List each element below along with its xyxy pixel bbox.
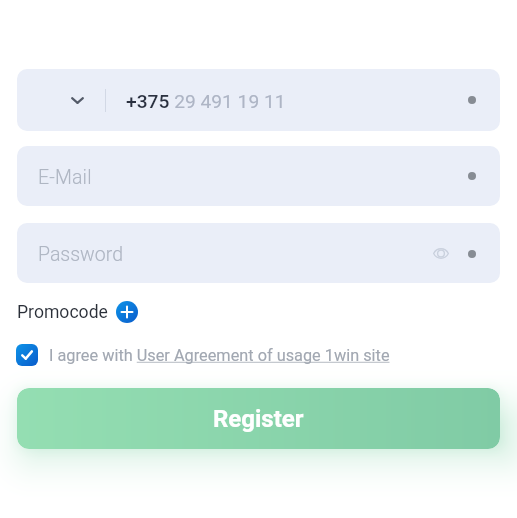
staticText: +375 29 491 19 11 [126,90,286,113]
button[interactable]: E-Mail [17,146,500,206]
button[interactable]: Promocode [17,301,138,323]
button[interactable]: Password [17,223,500,283]
staticText: E-Mail [38,166,92,189]
button[interactable]: I agree with User Agreement of usage 1wi… [16,344,390,366]
staticText: Register [213,405,304,433]
staticText: I agree with User Agreement of usage 1wi… [49,346,390,365]
staticText: Promocode [17,302,108,323]
button[interactable]: Select country code [17,69,500,131]
button[interactable]: Clear [468,172,476,180]
button[interactable]: Clear [468,250,476,258]
staticText: Password [38,243,123,266]
other: Select country code [71,97,84,104]
button[interactable]: Clear [468,96,476,104]
button[interactable]: Show password [433,247,449,260]
button[interactable]: Register [17,388,500,449]
